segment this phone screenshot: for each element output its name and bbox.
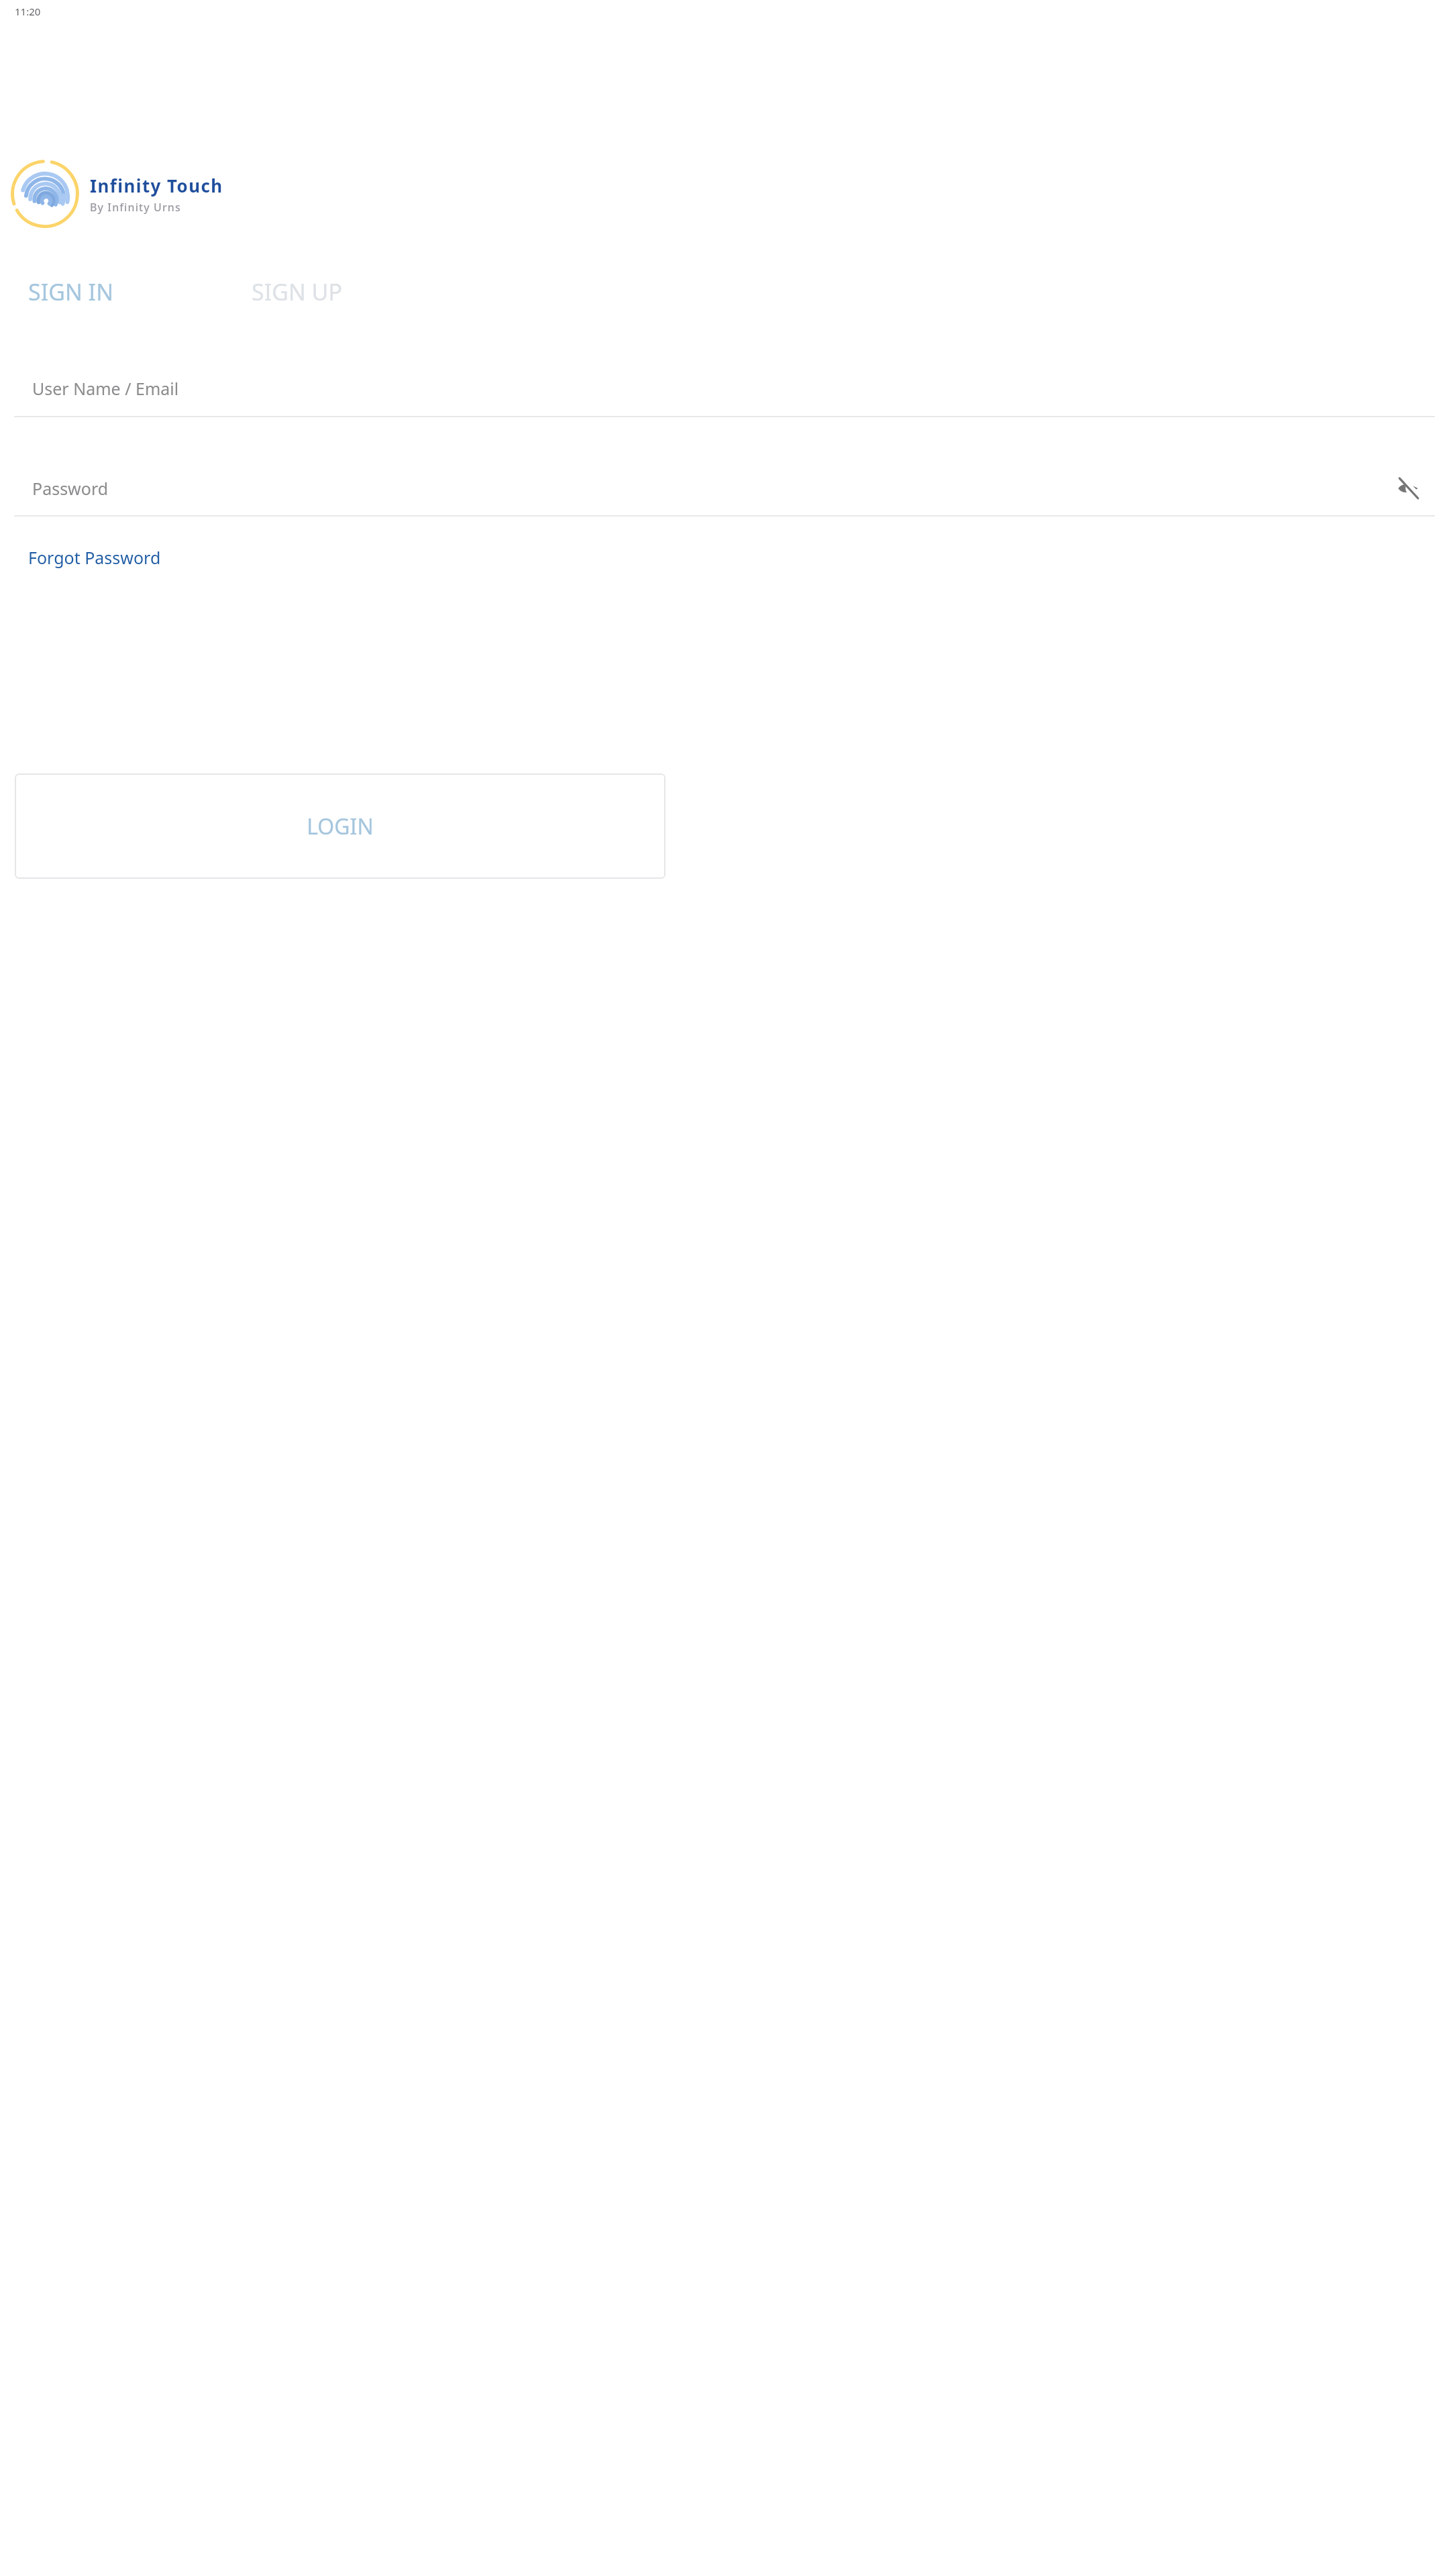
- staticText: Forgot Password: [28, 546, 161, 569]
- button[interactable]: Forgot Password: [14, 541, 175, 574]
- button[interactable]: SIGN IN: [0, 265, 221, 319]
- staticText: LOGIN: [307, 812, 374, 841]
- staticText: SIGN IN: [28, 276, 113, 307]
- staticText: Infinity Touch: [90, 174, 223, 197]
- button[interactable]: User Name / Email: [14, 361, 1435, 416]
- button[interactable]: SIGN UP: [221, 265, 443, 319]
- staticText: By Infinity Urns: [90, 200, 181, 215]
- staticText: Password: [32, 477, 109, 500]
- button[interactable]: Show password: [1391, 471, 1426, 506]
- button[interactable]: LOGIN: [15, 773, 665, 879]
- staticText: User Name / Email: [32, 377, 179, 400]
- staticText: SIGN UP: [252, 276, 343, 307]
- staticText: 11:20: [15, 5, 41, 18]
